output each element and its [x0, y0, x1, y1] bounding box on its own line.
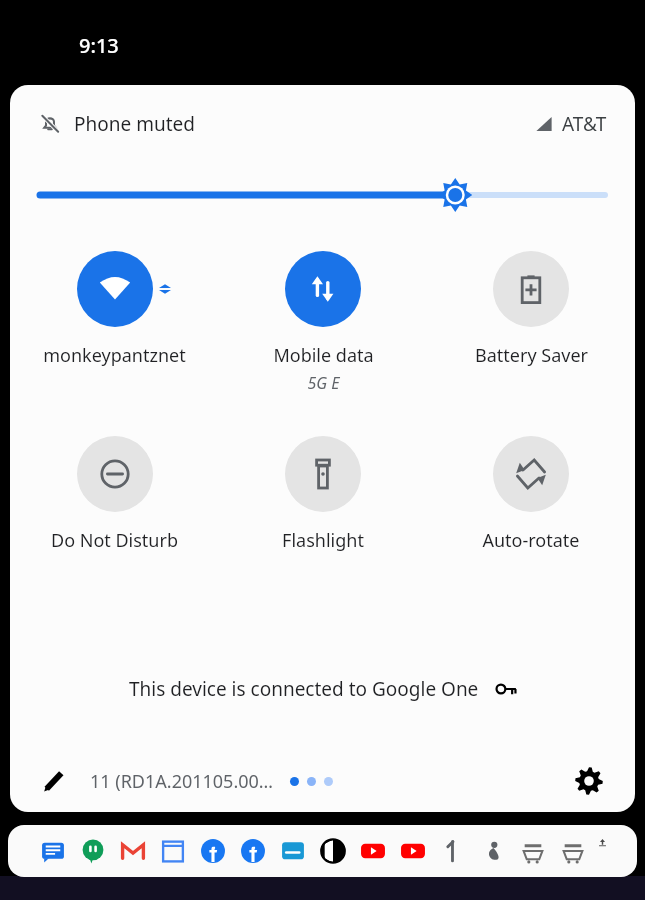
staticText: monkeypantznet: [43, 343, 186, 368]
button[interactable]: Amazon: [518, 836, 548, 866]
button[interactable]: Hangouts: [78, 836, 108, 866]
button[interactable]: Do Not Disturb: [10, 436, 219, 553]
button[interactable]: Auto-rotate: [427, 436, 635, 553]
button[interactable]: App: [438, 836, 468, 866]
staticText: Phone muted: [74, 111, 195, 137]
button[interactable]: Mobile data: [219, 251, 427, 394]
staticText: Battery Saver: [475, 343, 588, 368]
button[interactable]: Settings: [565, 757, 613, 805]
button[interactable]: Facebook: [198, 836, 228, 866]
staticText: This device is connected to Google One: [129, 676, 479, 702]
button[interactable]: monkeypantznet: [10, 251, 219, 368]
staticText: 11 (RD1A.201105.00…: [90, 769, 274, 794]
button[interactable]: Phone muted: [38, 111, 199, 137]
staticText: Mobile data: [273, 343, 374, 368]
button[interactable]: Edit tiles: [32, 759, 76, 803]
button[interactable]: Amazon: [558, 836, 588, 866]
button[interactable]: Flashlight: [219, 436, 427, 553]
button[interactable]: This device is connected to Google One: [10, 666, 635, 712]
button[interactable]: Gmail: [118, 836, 148, 866]
button[interactable]: Contrast app: [318, 836, 348, 866]
staticText: Do Not Disturb: [51, 528, 178, 553]
button[interactable]: App: [478, 836, 508, 866]
button[interactable]: Upload: [598, 836, 607, 866]
button[interactable]: Brightness: [30, 177, 615, 213]
button[interactable]: YouTube: [358, 836, 388, 866]
button[interactable]: Calendar: [158, 836, 188, 866]
staticText: 9:13: [79, 32, 119, 59]
staticText: 5G E: [307, 372, 340, 394]
staticText: AT&T: [562, 111, 607, 137]
button[interactable]: Facebook: [238, 836, 268, 866]
button[interactable]: Ring: [278, 836, 308, 866]
button[interactable]: Battery Saver: [427, 251, 635, 368]
staticText: Flashlight: [282, 528, 364, 553]
button[interactable]: Messages: [38, 836, 68, 866]
staticText: Auto-rotate: [482, 528, 580, 553]
button[interactable]: YouTube: [398, 836, 428, 866]
